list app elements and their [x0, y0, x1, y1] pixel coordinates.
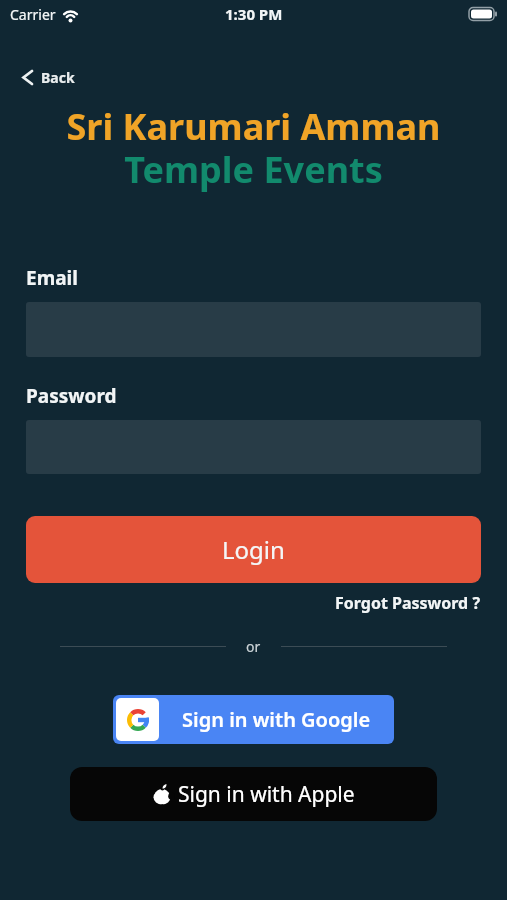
staticText: Sign in with Apple: [178, 780, 355, 809]
button[interactable]: Forgot Password ?: [335, 592, 481, 614]
staticText: Login: [222, 533, 285, 566]
button[interactable]: Sign in with Apple: [70, 767, 437, 821]
staticText: Sri Karumari Amman Temple Events: [0, 102, 507, 194]
staticText: Back: [41, 68, 75, 87]
staticText: or: [246, 637, 261, 656]
button[interactable]: Login: [26, 516, 481, 583]
staticText: Carrier: [10, 5, 56, 24]
button[interactable]: Back: [18, 64, 79, 91]
button[interactable]: Sign in with Google: [113, 695, 394, 744]
staticText: Email: [26, 265, 78, 291]
staticText: 1:30 PM: [225, 4, 283, 24]
staticText: Password: [26, 383, 117, 409]
staticText: Sign in with Google: [182, 706, 371, 733]
